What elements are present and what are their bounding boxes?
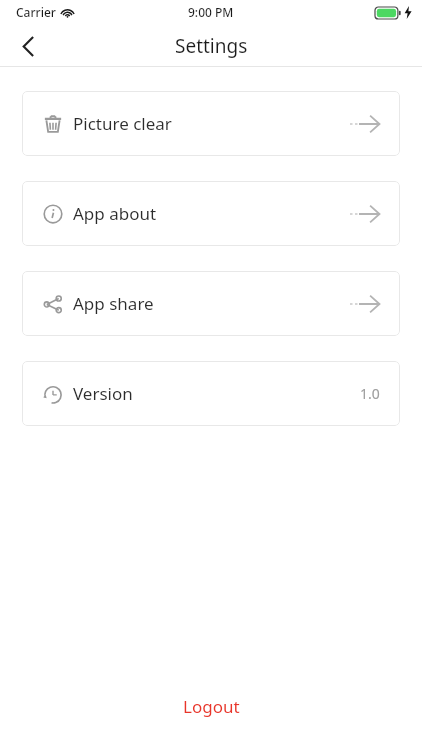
button[interactable]: App about	[22, 181, 400, 246]
staticText: 1.0	[360, 384, 380, 403]
button[interactable]: Version	[22, 361, 400, 426]
button[interactable]: Logout	[0, 685, 422, 728]
staticText: 9:00 PM	[188, 4, 234, 20]
staticText: App about	[73, 202, 157, 225]
button[interactable]: Back	[8, 26, 48, 66]
button[interactable]: App share	[22, 271, 400, 336]
staticText: Carrier	[16, 4, 56, 20]
button[interactable]: Picture clear	[22, 91, 400, 156]
staticText: App share	[73, 292, 154, 315]
staticText: Picture clear	[73, 112, 172, 135]
staticText: Settings	[175, 33, 248, 59]
staticText: Logout	[183, 695, 240, 718]
staticText: Version	[73, 382, 133, 405]
